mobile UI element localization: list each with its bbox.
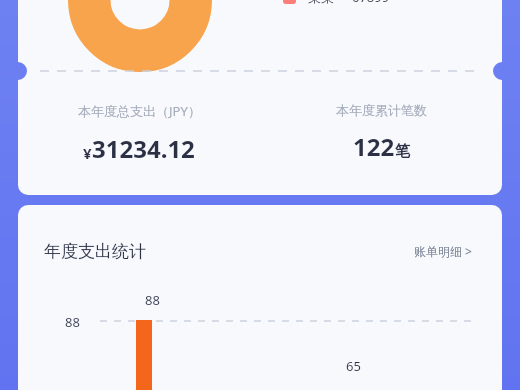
button[interactable]: 本年度总支出（JPY） <box>18 102 260 165</box>
button[interactable]: 本年度累计笔数 <box>260 102 502 163</box>
staticText: 31234.12 <box>92 132 195 165</box>
staticText: 65 <box>346 357 361 375</box>
staticText: 年度支出统计 <box>44 241 146 262</box>
staticText: 122 <box>353 130 395 163</box>
staticText: 88 <box>65 313 80 331</box>
staticText: 88 <box>145 291 160 309</box>
staticText: 本年度累计笔数 <box>336 102 427 118</box>
button[interactable]: 账单明细 > <box>410 239 476 263</box>
staticText: 本年度总支出（JPY） <box>78 102 201 120</box>
staticText: 67899 <box>352 0 390 6</box>
staticText: ¥ <box>83 143 92 163</box>
staticText: 笔 <box>395 142 410 161</box>
staticText: 菜菜 <box>308 0 334 5</box>
staticText: 账单明细 > <box>414 243 472 259</box>
